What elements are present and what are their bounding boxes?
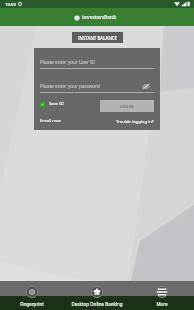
staticText: Please enter your User ID [40,59,96,65]
staticText: Save ID [49,101,64,107]
button[interactable]: Enroll now [40,117,61,125]
button[interactable]: Desktop Online Banking [64,281,129,310]
staticText: Please enter your password [40,83,100,89]
button[interactable]: INSTANT BALANCE [72,32,123,43]
staticText: 10:59 [5,1,16,7]
button[interactable]: LOG IN [100,100,154,112]
staticText: INSTANT BALANCE [78,35,118,41]
staticText: Trouble logging in? [116,119,154,125]
staticText: Fingerprint [20,301,44,307]
button[interactable]: Fingerprint [0,281,64,310]
staticText: Desktop Online Banking [71,301,123,307]
staticText: LOG IN [120,104,134,109]
button[interactable]: More [129,281,194,310]
staticText: More [156,301,168,307]
staticText: Enroll now [40,118,61,124]
button[interactable]: Show password [141,82,151,90]
button[interactable]: Please enter your User ID [40,59,154,68]
button[interactable]: Save ID [40,100,64,108]
staticText: investorsBank [82,14,117,21]
button[interactable]: Please enter your password [40,83,154,92]
button[interactable]: Trouble logging in? [116,118,154,126]
